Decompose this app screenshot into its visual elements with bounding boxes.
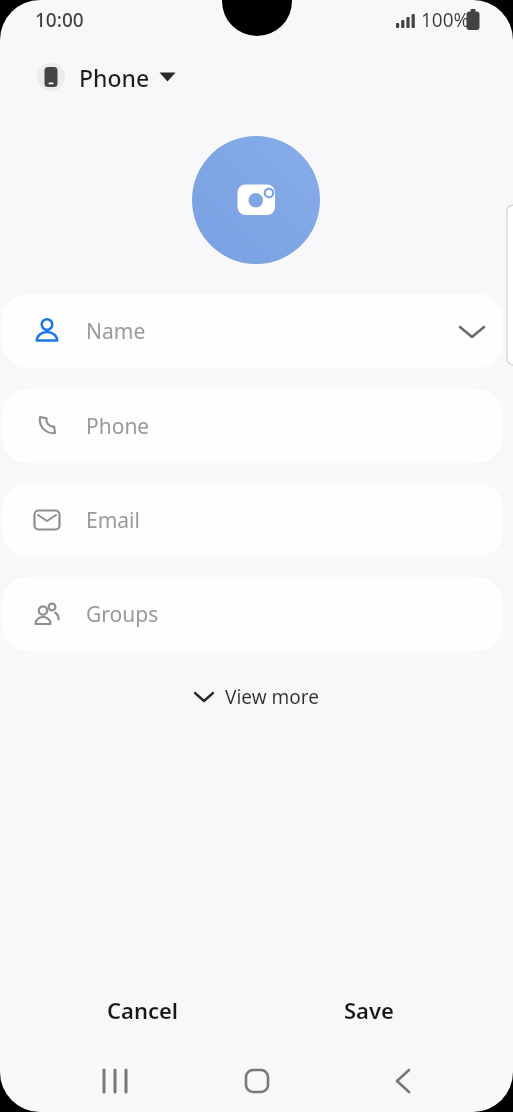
staticText: 100% <box>421 7 470 33</box>
button[interactable]: Phone <box>2 389 503 463</box>
button[interactable] <box>234 1059 280 1103</box>
button[interactable]: View more <box>156 678 356 716</box>
staticText: View more <box>225 684 319 710</box>
button[interactable]: Email <box>2 483 503 557</box>
button[interactable]: Cancel <box>30 980 256 1040</box>
staticText: Phone <box>79 62 150 93</box>
staticText: Groups <box>86 600 159 629</box>
button[interactable]: Groups <box>2 577 503 651</box>
staticText: Save <box>344 995 394 1025</box>
staticText: Phone <box>86 412 150 441</box>
button[interactable]: Phone <box>37 61 176 93</box>
button[interactable] <box>92 1059 138 1103</box>
button[interactable] <box>192 136 320 264</box>
button[interactable]: Name <box>2 294 503 368</box>
staticText: Cancel <box>107 995 179 1025</box>
staticText: 10:00 <box>35 7 84 33</box>
staticText: Email <box>86 506 140 535</box>
staticText: Name <box>86 317 146 346</box>
button[interactable] <box>380 1059 426 1103</box>
button[interactable]: Save <box>256 980 482 1040</box>
